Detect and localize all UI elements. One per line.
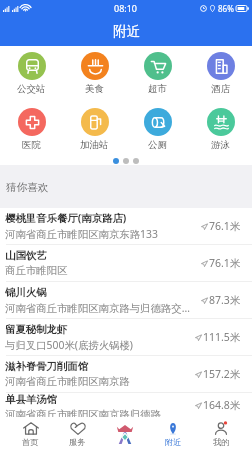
button[interactable]: 留夏秘制龙虾	[0, 319, 252, 355]
staticText: 留夏秘制龙虾	[5, 323, 68, 336]
staticText: 公交站	[17, 83, 46, 95]
staticText: 附近	[113, 23, 140, 40]
button[interactable]: 樱桃里音乐餐厅(南京路店)	[0, 208, 252, 244]
staticText: 公厕	[148, 139, 167, 151]
staticText: 酒店	[211, 83, 230, 95]
staticText: 08:10	[114, 2, 138, 14]
button[interactable]: 美食	[63, 52, 126, 95]
button[interactable]: 超市	[126, 52, 189, 95]
staticText: 美食	[85, 83, 104, 95]
button[interactable]: 酒店	[189, 52, 252, 95]
staticText: 87.3米	[209, 293, 241, 307]
staticText: 服务	[69, 437, 86, 447]
button[interactable]: 我的	[197, 417, 245, 450]
button[interactable]: 服务	[54, 417, 101, 450]
staticText: 河南省商丘市睢阳区南京东路133	[5, 227, 158, 241]
button[interactable]: 游泳	[189, 108, 252, 151]
staticText: 157.2米	[203, 367, 241, 381]
staticText: 加油站	[80, 139, 109, 151]
staticText: 111.5米	[203, 330, 241, 344]
button[interactable]: 山国饮艺	[0, 245, 252, 281]
staticText: 单县羊汤馆	[5, 393, 57, 406]
staticText: 与归叉口500米(底捞火锅楼)	[5, 338, 133, 352]
button[interactable]: 单县羊汤馆	[0, 393, 252, 417]
button[interactable]: 医院	[0, 108, 63, 151]
staticText: 滋补脊骨刀削面馆	[5, 360, 89, 373]
button[interactable]: 锦川火锅	[0, 282, 252, 318]
staticText: 商丘市睢阳区	[5, 264, 68, 277]
button[interactable]: 公交站	[0, 52, 63, 95]
staticText: 樱桃里音乐餐厅(南京路店)	[5, 211, 127, 225]
button[interactable]: 加油站	[63, 108, 126, 151]
staticText: 164.8米	[203, 398, 241, 412]
staticText: 86%	[218, 3, 234, 14]
staticText: 76.1米	[209, 219, 241, 233]
staticText: 河南省商丘市睢阳区南京路	[5, 375, 130, 388]
button[interactable]: 滋补脊骨刀削面馆	[0, 356, 252, 392]
staticText: 游泳	[211, 139, 230, 151]
staticText: 医院	[22, 139, 41, 151]
staticText: 河南省商丘市睢阳区南京路归德路	[5, 408, 161, 417]
button[interactable]: 发现	[101, 417, 149, 450]
staticText: 首页	[22, 437, 39, 447]
staticText: 河南省商丘市睢阳区南京路与归德路交…	[5, 301, 190, 315]
staticText: 76.1米	[209, 256, 241, 270]
button[interactable]: 首页	[7, 417, 54, 450]
staticText: 超市	[148, 83, 167, 95]
staticText: 我的	[213, 437, 230, 447]
staticText: 山国饮艺	[5, 249, 47, 262]
staticText: 锦川火锅	[5, 286, 47, 299]
staticText: 猜你喜欢	[6, 181, 49, 194]
staticText: 附近	[165, 437, 182, 447]
button[interactable]: 公厕	[126, 108, 189, 151]
button[interactable]: 附近	[149, 417, 197, 450]
